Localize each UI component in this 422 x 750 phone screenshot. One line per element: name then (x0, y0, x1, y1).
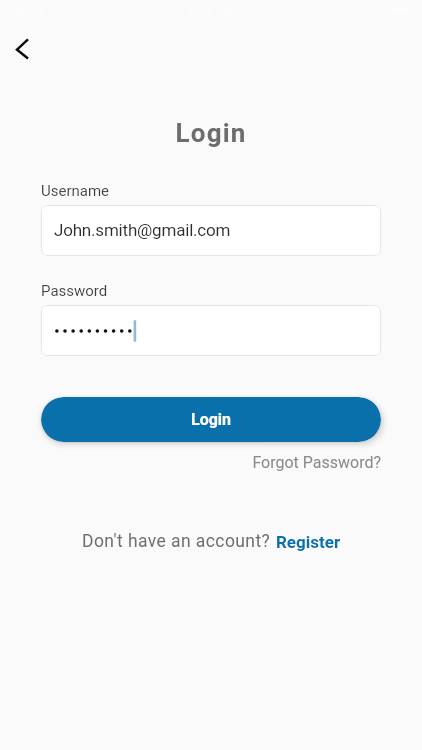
button[interactable]: Back (0, 27, 45, 72)
staticText: Password (41, 282, 108, 300)
staticText: John.smith@gmail.com (54, 220, 231, 240)
staticText: Login (191, 410, 232, 429)
button[interactable] (41, 305, 381, 356)
button[interactable]: Forgot Password? (0, 453, 381, 472)
button[interactable]: Register (276, 532, 341, 552)
staticText: Login (0, 118, 422, 148)
button[interactable]: Login (41, 397, 381, 442)
staticText: Don't have an account? (82, 531, 276, 552)
staticText: Username (41, 182, 110, 200)
button[interactable]: John.smith@gmail.com (41, 205, 381, 256)
